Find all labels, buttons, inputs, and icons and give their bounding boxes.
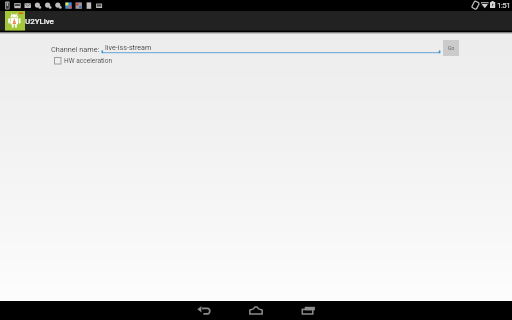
button[interactable]: Home [238,301,274,320]
button[interactable]: HW acceleration [54,56,113,64]
staticText: U2YLive [25,17,54,26]
button[interactable]: Go [443,40,459,56]
staticText: HW acceleration [64,57,113,65]
staticText: Go [448,45,455,51]
button[interactable]: Recent apps [290,301,326,320]
staticText: Channel name: [51,45,100,54]
button[interactable]: Back [186,301,222,320]
staticText: 1:51 [497,1,511,10]
button[interactable]: U2YLive app icon [5,11,25,31]
staticText: live-iss-stream [105,43,152,51]
